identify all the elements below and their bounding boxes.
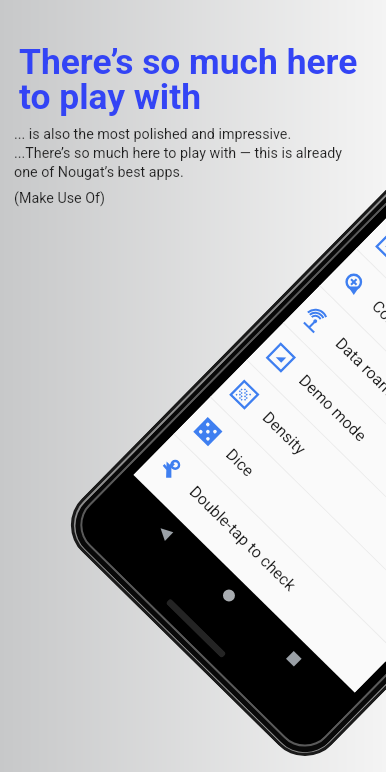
- button[interactable]: Home: [201, 567, 257, 624]
- staticText: There’s so much here to play with: [19, 41, 358, 117]
- staticText: (Make Use Of): [14, 190, 106, 207]
- button[interactable]: Back: [136, 504, 193, 561]
- staticText: ... is also the most polished and impres…: [14, 126, 342, 181]
- staticText: Connectivity: [368, 297, 386, 372]
- staticText: Double-tap to check: [186, 482, 300, 595]
- button[interactable]: Dice: [174, 397, 386, 651]
- staticText: Dice: [222, 445, 258, 481]
- button[interactable]: Recent apps: [265, 631, 322, 688]
- button[interactable]: Demo mode: [247, 323, 386, 577]
- staticText: Data roaming: [332, 334, 386, 415]
- button[interactable]: Data roaming: [283, 286, 386, 540]
- staticText: Demo mode: [295, 371, 370, 445]
- button[interactable]: Density: [210, 360, 386, 614]
- button[interactable]: Double-tap to check: [137, 434, 386, 689]
- button[interactable]: Cellular data always active: [356, 212, 386, 466]
- staticText: Density: [259, 408, 310, 458]
- button[interactable]: Connectivity: [320, 249, 386, 503]
